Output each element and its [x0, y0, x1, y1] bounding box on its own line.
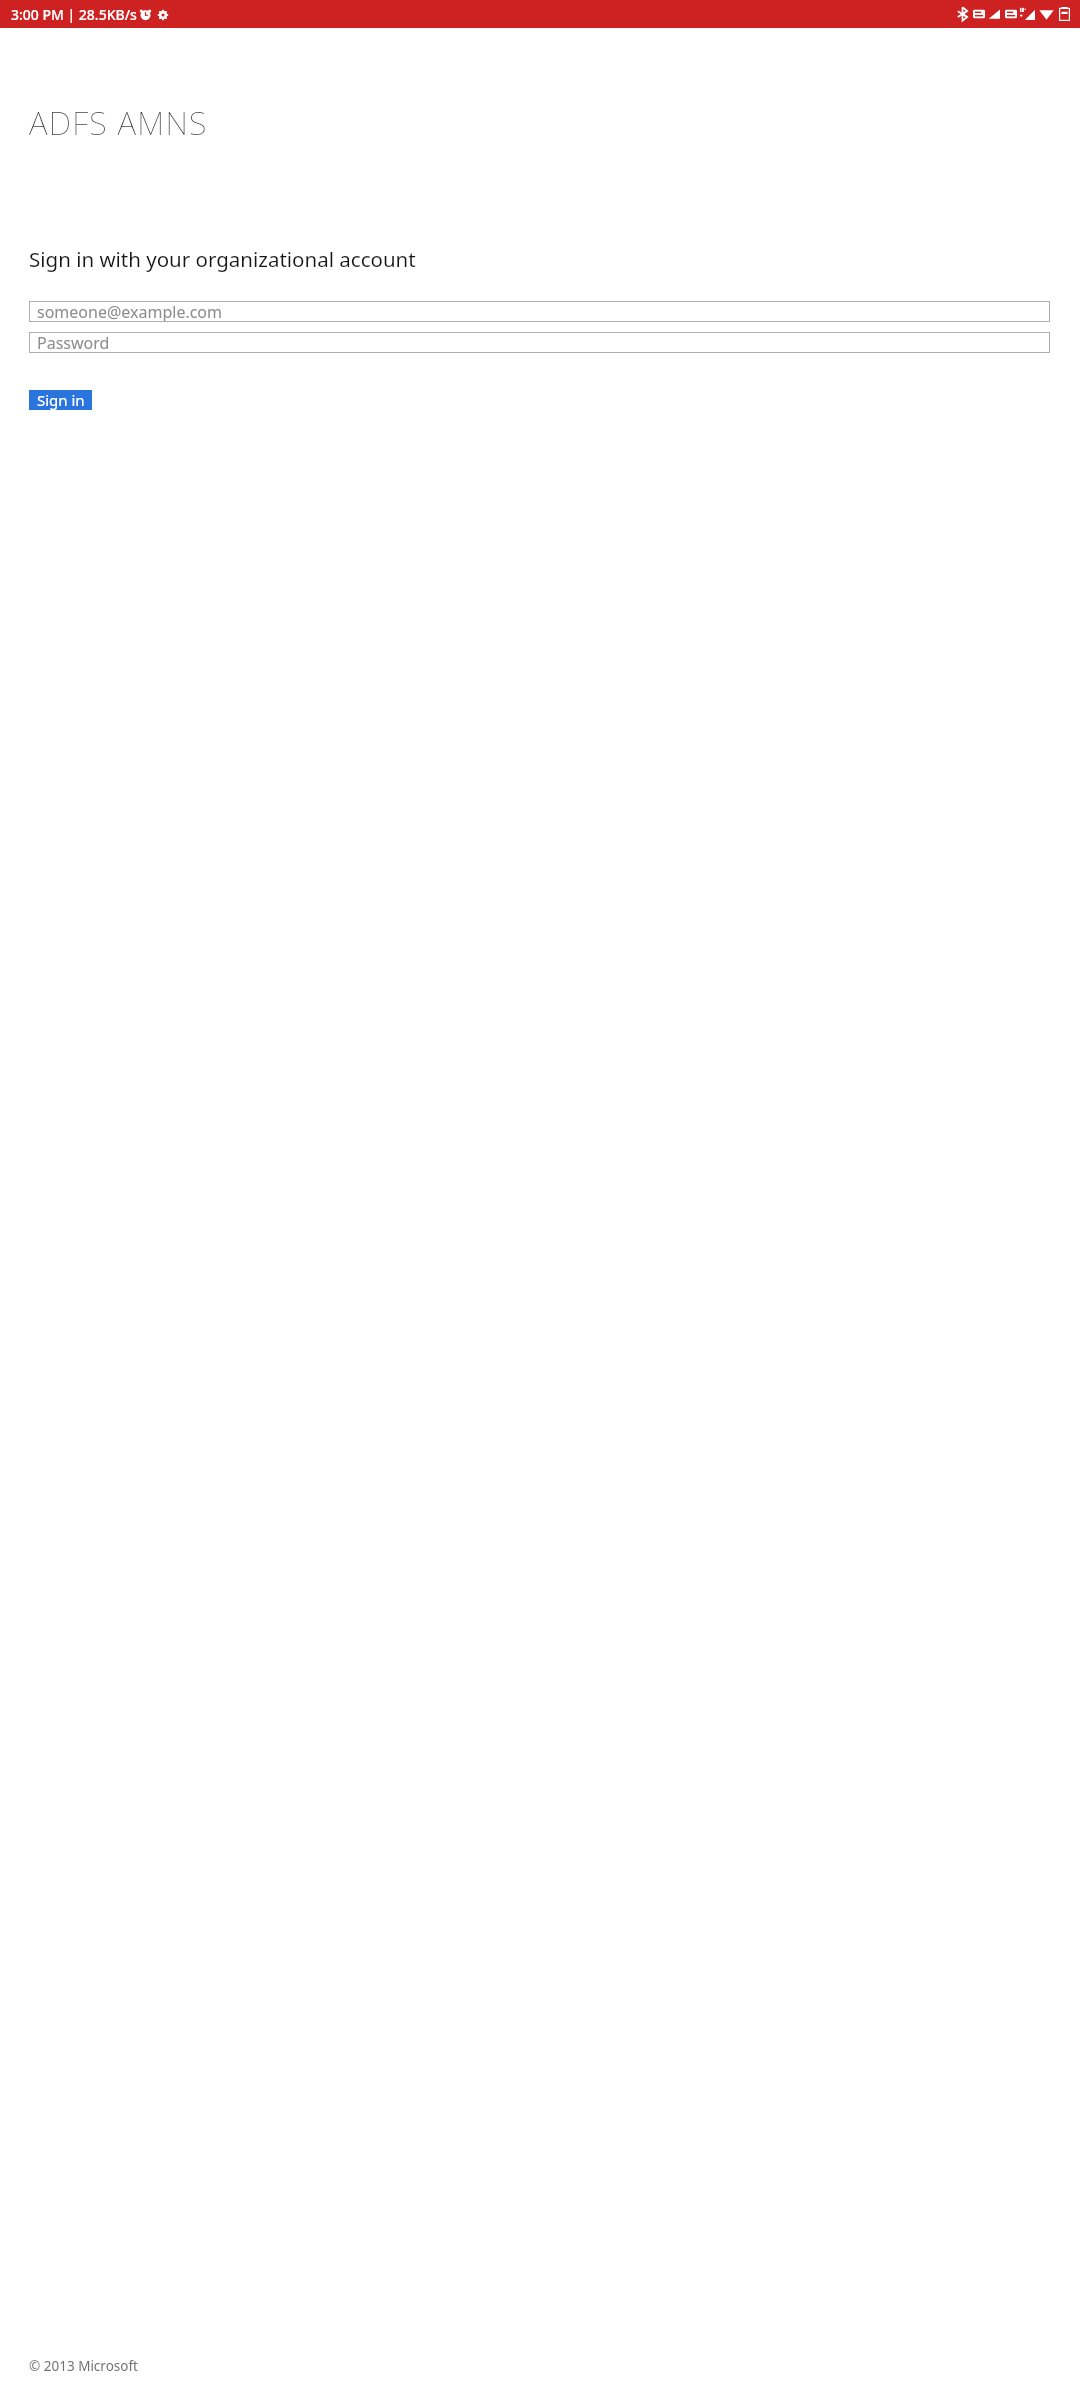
- button[interactable]: someone@example.com: [29, 301, 1050, 322]
- staticText: someone@example.com: [37, 301, 223, 322]
- button[interactable]: Password: [29, 332, 1050, 353]
- staticText: Sign in with your organizational account: [29, 245, 416, 273]
- staticText: Password: [37, 332, 110, 353]
- staticText: Sign in: [37, 390, 85, 410]
- staticText: ADFS AMNS: [29, 101, 208, 145]
- button[interactable]: Sign in: [29, 390, 92, 410]
- staticText: © 2013 Microsoft: [29, 2357, 138, 2375]
- staticText: 3:00 PM | 28.5KB/s: [11, 5, 137, 24]
